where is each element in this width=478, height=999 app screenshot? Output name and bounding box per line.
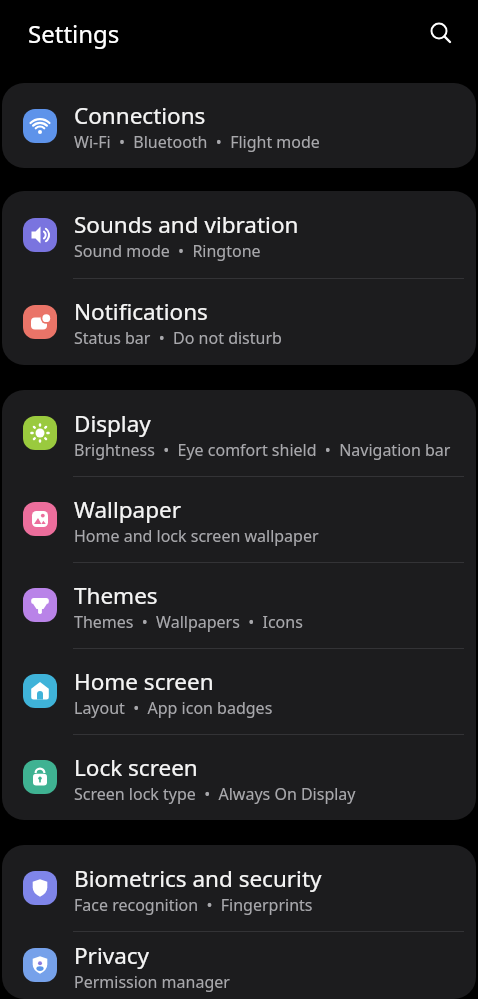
staticText: Notifications (74, 296, 208, 327)
staticText: Home and lock screen wallpaper (74, 525, 319, 547)
button[interactable] (427, 19, 455, 47)
staticText: Lock screen (74, 752, 198, 783)
staticText: Screen lock type • Always On Display (74, 783, 356, 805)
button[interactable]: Lock screen (2, 734, 476, 820)
staticText: Brightness • Eye comfort shield • Naviga… (74, 439, 451, 461)
staticText: Settings (28, 17, 120, 50)
staticText: Home screen (74, 666, 214, 697)
staticText: Face recognition • Fingerprints (74, 894, 313, 916)
button[interactable]: Display (2, 390, 476, 476)
staticText: Sound mode • Ringtone (74, 240, 261, 262)
staticText: Display (74, 408, 151, 439)
staticText: Connections (74, 100, 206, 131)
staticText: Sounds and vibration (74, 209, 299, 240)
button[interactable]: Home screen (2, 648, 476, 734)
staticText: Permission manager (74, 971, 230, 993)
button[interactable]: Wallpaper (2, 476, 476, 562)
button[interactable]: Themes (2, 562, 476, 648)
button[interactable]: Connections (2, 83, 476, 168)
staticText: Wi-Fi • Bluetooth • Flight mode (74, 131, 320, 153)
button[interactable]: Privacy (2, 931, 476, 999)
staticText: Layout • App icon badges (74, 697, 273, 719)
staticText: Themes • Wallpapers • Icons (74, 611, 303, 633)
staticText: Privacy (74, 940, 150, 971)
staticText: Biometrics and security (74, 863, 322, 894)
button[interactable]: Sounds and vibration (2, 191, 476, 278)
button[interactable]: Biometrics and security (2, 845, 476, 931)
staticText: Status bar • Do not disturb (74, 327, 282, 349)
staticText: Themes (74, 580, 158, 611)
staticText: Wallpaper (74, 494, 181, 525)
button[interactable]: Notifications (2, 278, 476, 365)
